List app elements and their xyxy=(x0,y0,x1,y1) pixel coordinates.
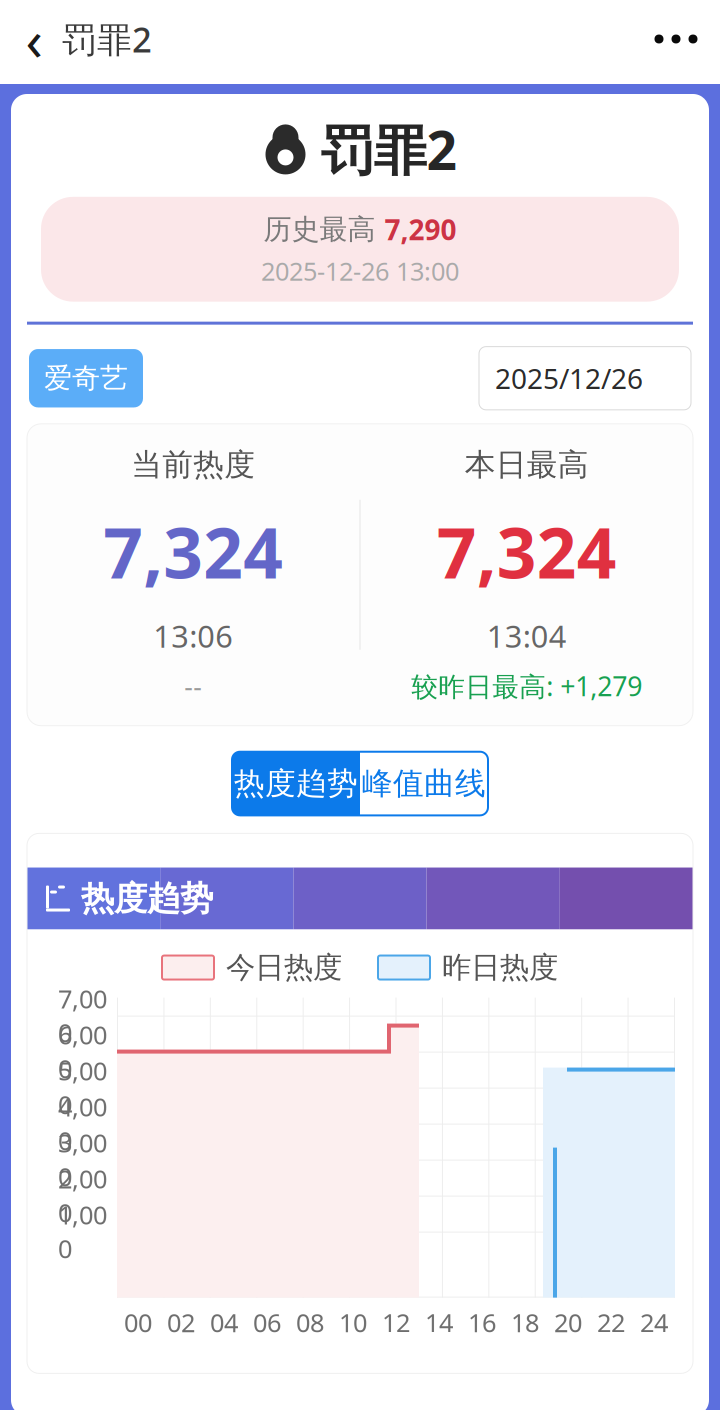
staticText: 08 xyxy=(296,1306,324,1339)
button[interactable]: 爱奇艺 xyxy=(29,349,143,407)
staticText: -- xyxy=(184,668,202,704)
staticText: 3,000 xyxy=(58,1126,107,1193)
staticText: 24 xyxy=(640,1306,668,1339)
staticText: 爱奇艺 xyxy=(44,361,128,395)
button[interactable]: 热度趋势 xyxy=(232,752,360,815)
staticText: 2,000 xyxy=(58,1162,107,1229)
staticText: 罚罪2 xyxy=(62,16,152,62)
staticText: 20 xyxy=(554,1306,582,1339)
staticText: 2025-12-26 13:00 xyxy=(261,254,459,288)
staticText: 历史最高 xyxy=(263,212,375,247)
staticText: 罚罪2 xyxy=(320,114,457,185)
staticText: 14 xyxy=(425,1306,453,1339)
staticText: 10 xyxy=(339,1306,367,1339)
button[interactable]: Back xyxy=(12,14,56,64)
staticText: 4,000 xyxy=(58,1090,107,1157)
staticText: 22 xyxy=(597,1306,625,1339)
staticText: ‹ xyxy=(25,2,42,76)
staticText: 热度趋势 xyxy=(81,878,213,919)
button[interactable]: More options xyxy=(644,16,708,62)
staticText: 16 xyxy=(468,1306,496,1339)
staticText: 昨日热度 xyxy=(442,949,558,985)
staticText: 13:06 xyxy=(153,616,233,656)
staticText: 00 xyxy=(124,1306,152,1339)
staticText: 7,000 xyxy=(58,982,107,1049)
staticText: 1,000 xyxy=(58,1198,107,1265)
staticText: 热度趋势 xyxy=(234,765,358,802)
staticText: 18 xyxy=(511,1306,539,1339)
button[interactable]: 罚罪2 xyxy=(56,14,162,64)
staticText: 5,000 xyxy=(58,1054,107,1121)
staticText: 7,290 xyxy=(384,211,456,248)
staticText: 当前热度 xyxy=(131,446,255,483)
staticText: 较昨日最高: +1,279 xyxy=(411,668,642,704)
staticText: 12 xyxy=(382,1306,410,1339)
button[interactable]: 峰值曲线 xyxy=(360,752,488,815)
staticText: 本日最高 xyxy=(465,446,589,483)
staticText: 6,000 xyxy=(58,1018,107,1085)
button[interactable]: 2025/12/26 xyxy=(479,347,691,410)
staticText: 04 xyxy=(210,1306,238,1339)
staticText: 02 xyxy=(167,1306,195,1339)
staticText: 7,324 xyxy=(103,505,283,598)
staticText: 峰值曲线 xyxy=(362,765,486,802)
staticText: 今日热度 xyxy=(226,949,342,985)
staticText: 7,324 xyxy=(437,505,617,598)
staticText: 06 xyxy=(253,1306,281,1339)
staticText: 13:04 xyxy=(487,616,567,656)
staticText: 2025/12/26 xyxy=(495,360,643,397)
